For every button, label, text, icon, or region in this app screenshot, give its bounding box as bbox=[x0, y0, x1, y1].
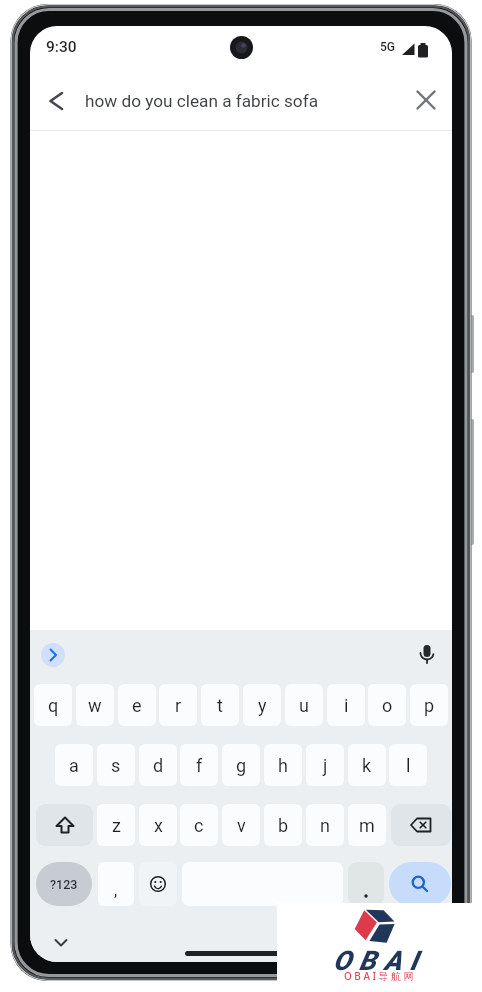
button[interactable]: i bbox=[327, 684, 365, 726]
button[interactable]: a bbox=[55, 744, 93, 786]
staticText: b bbox=[278, 815, 289, 836]
button[interactable]: m bbox=[348, 804, 386, 846]
button[interactable]: g bbox=[222, 744, 260, 786]
button[interactable]: b bbox=[264, 804, 302, 846]
staticText: x bbox=[154, 815, 163, 836]
button[interactable]: j bbox=[306, 744, 344, 786]
staticText: 9:30 bbox=[46, 38, 77, 56]
button[interactable] bbox=[391, 804, 451, 846]
button[interactable]: t bbox=[201, 684, 239, 726]
staticText: z bbox=[112, 815, 121, 836]
button[interactable] bbox=[49, 933, 73, 953]
button[interactable]: ?123 bbox=[36, 862, 92, 906]
button[interactable]: r bbox=[159, 684, 197, 726]
button[interactable]: l bbox=[389, 744, 427, 786]
staticText: t bbox=[217, 695, 223, 716]
staticText: y bbox=[258, 695, 267, 716]
staticText: i bbox=[344, 695, 349, 716]
button[interactable]: d bbox=[139, 744, 177, 786]
staticText: j bbox=[323, 755, 328, 776]
button[interactable]: , bbox=[98, 862, 134, 906]
button[interactable]: v bbox=[222, 804, 260, 846]
button[interactable]: e bbox=[118, 684, 156, 726]
button[interactable]: q bbox=[34, 684, 72, 726]
button[interactable]: k bbox=[348, 744, 386, 786]
staticText: q bbox=[48, 695, 59, 716]
staticText: 5G bbox=[380, 40, 395, 54]
staticText: k bbox=[362, 755, 372, 776]
button[interactable]: x bbox=[139, 804, 177, 846]
staticText: ?123 bbox=[50, 877, 78, 892]
staticText: l bbox=[406, 755, 411, 776]
button[interactable]: h bbox=[264, 744, 302, 786]
staticText: OBAI导航网 bbox=[344, 969, 416, 983]
button[interactable] bbox=[42, 87, 70, 115]
staticText: h bbox=[278, 755, 288, 776]
button[interactable]: n bbox=[306, 804, 344, 846]
staticText: m bbox=[359, 815, 375, 836]
staticText: s bbox=[111, 755, 121, 776]
staticText: u bbox=[299, 695, 309, 716]
button[interactable]: u bbox=[285, 684, 323, 726]
button[interactable] bbox=[412, 86, 440, 114]
staticText: e bbox=[132, 695, 142, 716]
button[interactable] bbox=[139, 862, 177, 906]
staticText: OBAI bbox=[333, 945, 426, 971]
button[interactable] bbox=[348, 862, 384, 906]
button[interactable]: s bbox=[97, 744, 135, 786]
staticText: c bbox=[194, 815, 204, 836]
button[interactable] bbox=[416, 643, 438, 667]
staticText: v bbox=[237, 815, 246, 836]
button[interactable] bbox=[389, 862, 451, 906]
staticText: n bbox=[320, 815, 330, 836]
staticText: w bbox=[88, 695, 102, 716]
staticText: g bbox=[236, 755, 247, 776]
staticText: a bbox=[69, 755, 79, 776]
staticText: how do you clean a fabric sofa bbox=[85, 91, 318, 111]
staticText: o bbox=[382, 695, 393, 716]
button[interactable]: o bbox=[368, 684, 406, 726]
staticText: , bbox=[114, 881, 118, 900]
button[interactable]: w bbox=[76, 684, 114, 726]
button[interactable]: y bbox=[243, 684, 281, 726]
staticText: f bbox=[196, 755, 203, 776]
button[interactable]: f bbox=[180, 744, 218, 786]
staticText: r bbox=[175, 695, 182, 716]
button[interactable]: z bbox=[97, 804, 135, 846]
button[interactable]: c bbox=[180, 804, 218, 846]
button[interactable]: p bbox=[410, 684, 448, 726]
button[interactable] bbox=[41, 643, 65, 667]
staticText: d bbox=[153, 755, 164, 776]
staticText: p bbox=[424, 695, 435, 716]
button[interactable] bbox=[36, 804, 93, 846]
